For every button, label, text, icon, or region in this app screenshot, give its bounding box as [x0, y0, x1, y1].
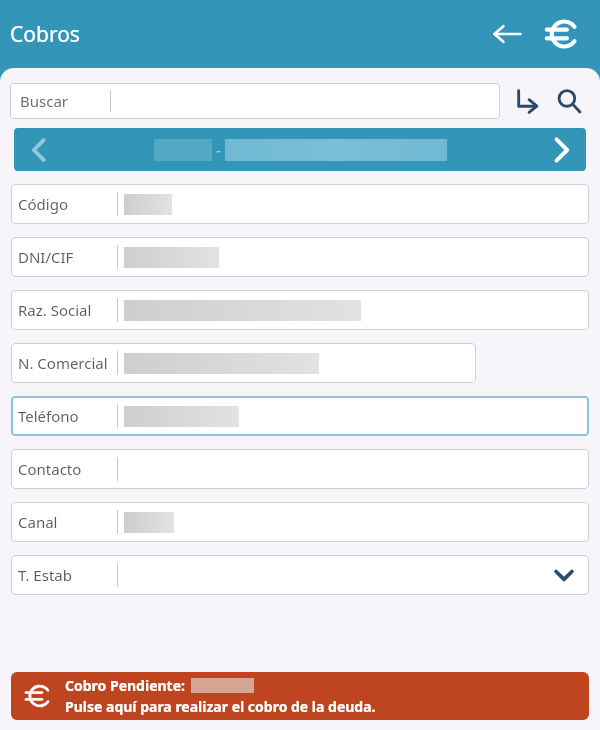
button[interactable]: Back	[484, 11, 530, 57]
button[interactable]: Search	[550, 82, 588, 120]
button[interactable]: Código	[11, 184, 589, 224]
staticText: Canal	[18, 512, 58, 532]
staticText: Raz. Social	[18, 300, 92, 320]
button[interactable]: Teléfono	[11, 396, 589, 436]
staticText: Código	[18, 194, 68, 214]
staticText: Pulse aquí para realizar el cobro de la …	[65, 697, 376, 716]
button[interactable]: DNI/CIF	[11, 237, 589, 277]
staticText: -	[212, 140, 225, 160]
button[interactable]: T. Estab	[11, 555, 589, 595]
button[interactable]: Cobro Pendiente:	[11, 672, 589, 720]
staticText: Cobro Pendiente:	[65, 676, 185, 695]
other: Expand	[551, 562, 577, 588]
staticText: Buscar	[20, 91, 69, 111]
button[interactable]: Raz. Social	[11, 290, 589, 330]
staticText: Teléfono	[18, 406, 79, 426]
other: Next	[536, 128, 586, 171]
button[interactable]: N. Comercial	[11, 343, 476, 383]
button[interactable]: Buscar	[10, 83, 500, 119]
staticText: Cobros	[10, 20, 80, 49]
button[interactable]: Contacto	[11, 449, 589, 489]
button[interactable]: Previous	[14, 128, 586, 171]
staticText: DNI/CIF	[18, 247, 74, 267]
button[interactable]: Payments	[538, 10, 586, 58]
other: Previous	[14, 128, 64, 171]
staticText: N. Comercial	[18, 353, 108, 373]
button[interactable]: Go to	[508, 82, 546, 120]
staticText: T. Estab	[18, 565, 72, 585]
staticText: Contacto	[18, 459, 82, 479]
button[interactable]: Canal	[11, 502, 589, 542]
